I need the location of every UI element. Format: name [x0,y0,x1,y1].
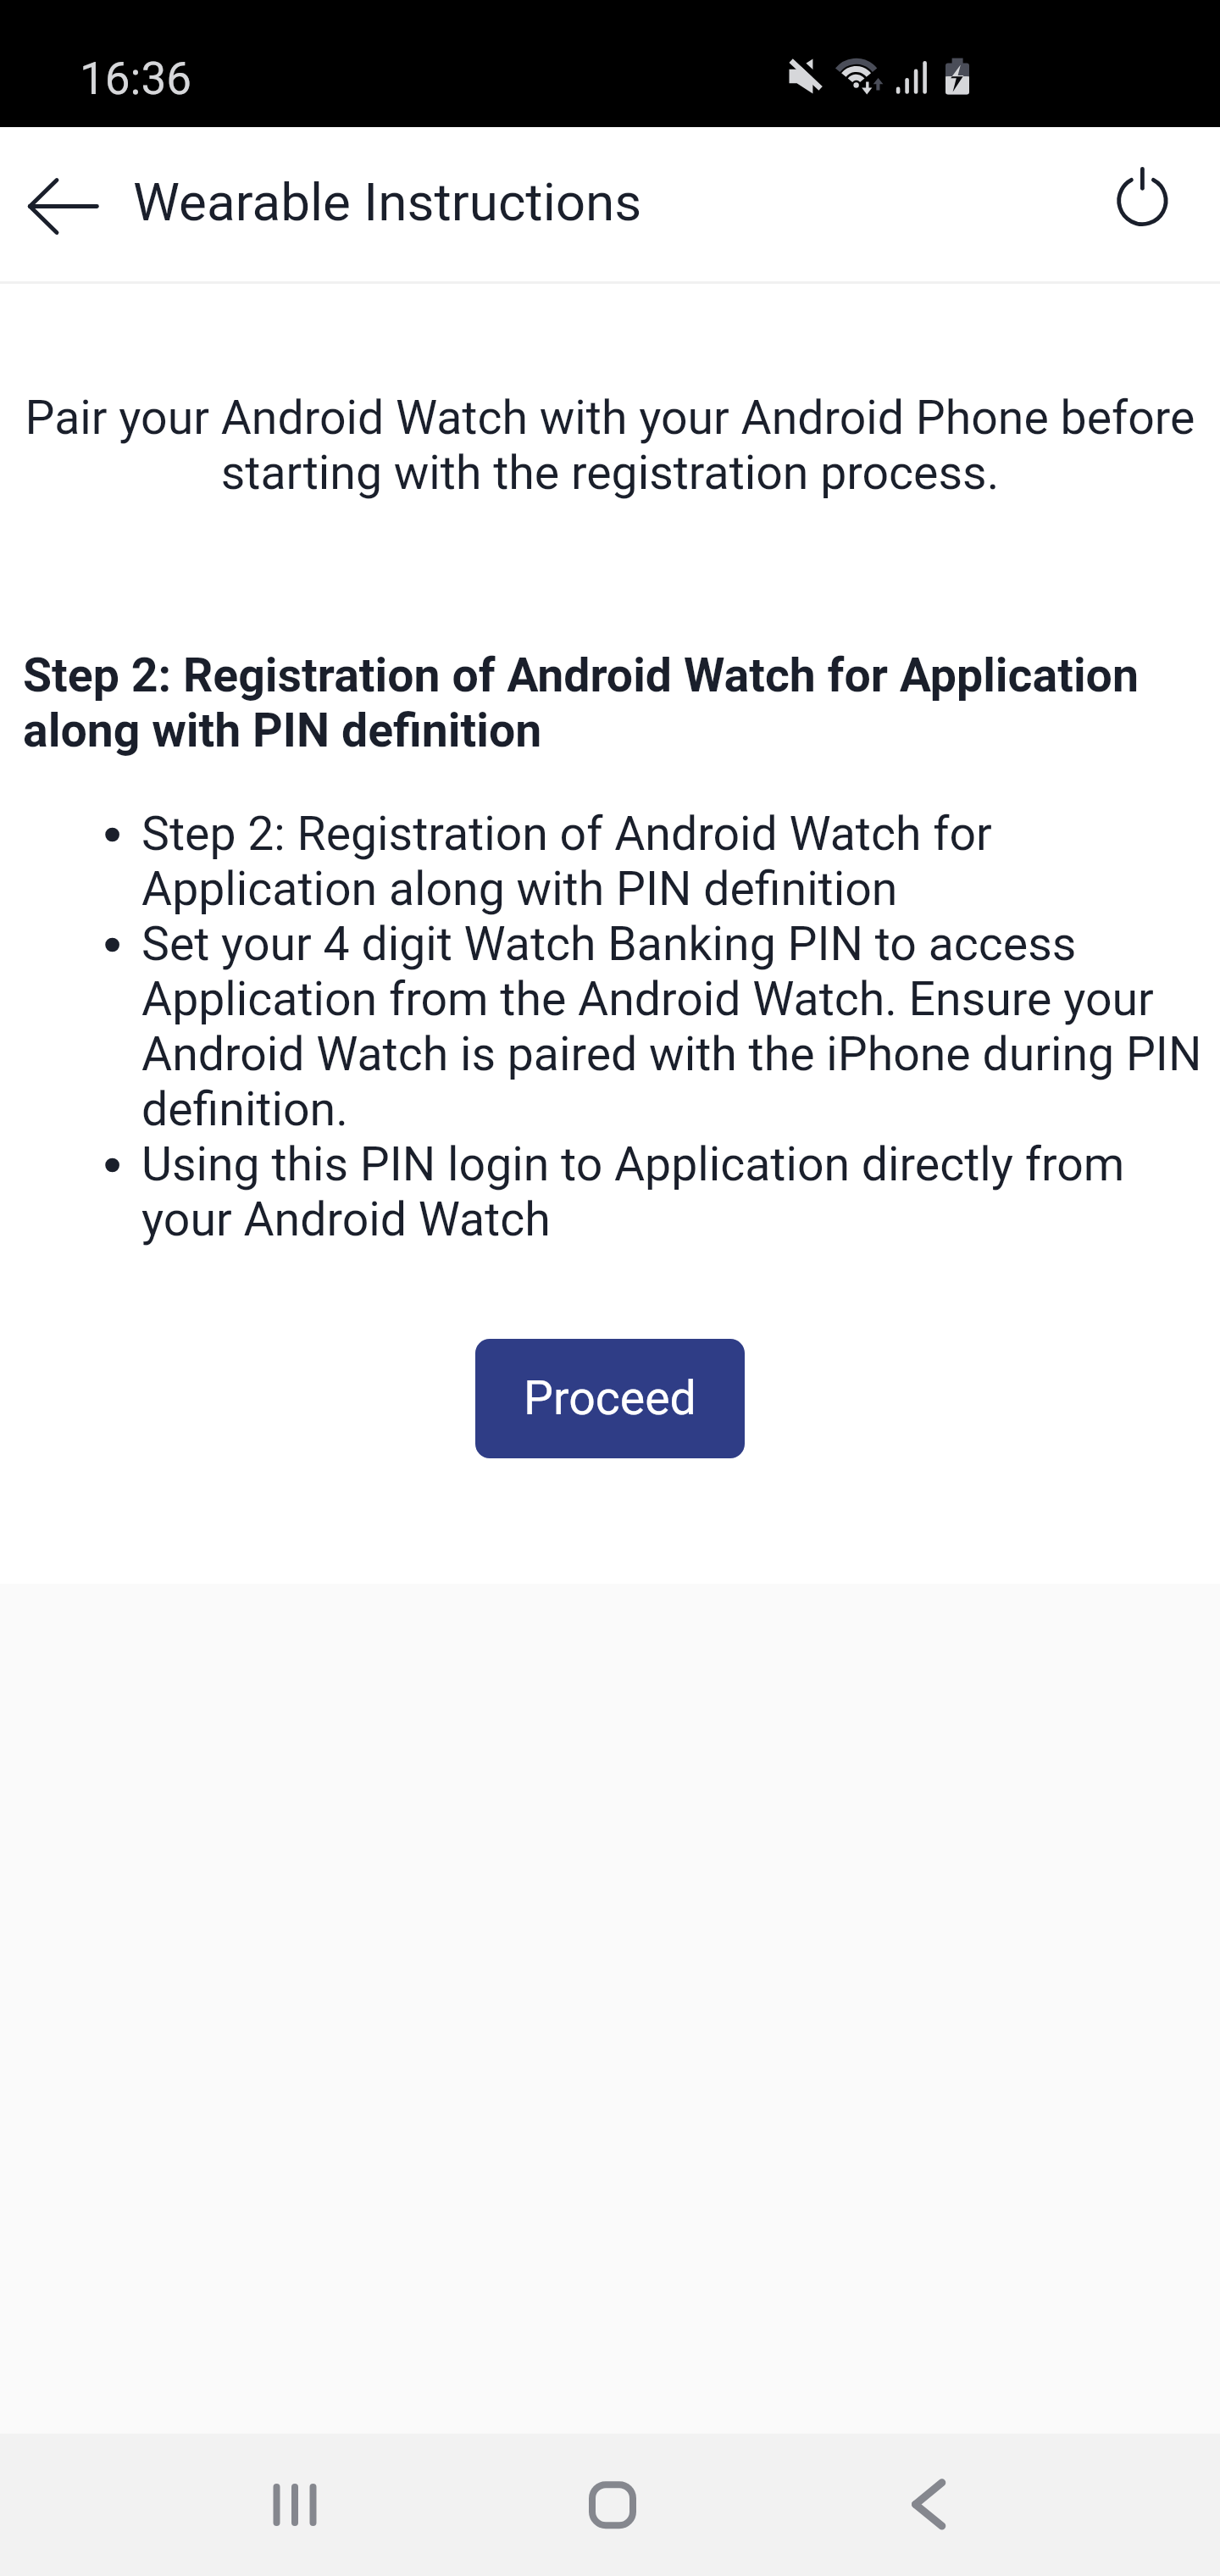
button[interactable]: Back [0,127,127,281]
staticText: Step 2: Registration of Android Watch fo… [23,648,1169,758]
staticText: Step 2: Registration of Android Watch fo… [141,807,1212,917]
staticText: Using this PIN login to Application dire… [141,1137,1212,1247]
staticText: 16:36 [80,53,191,105]
button[interactable]: Power [1093,127,1220,281]
button[interactable]: Home [535,2434,688,2576]
button[interactable]: Proceed [475,1339,745,1458]
staticText: Proceed [524,1371,696,1426]
staticText: Set your 4 digit Watch Banking PIN to ac… [141,917,1212,1137]
button[interactable]: Recent apps [219,2434,371,2576]
button[interactable]: Back [852,2434,1005,2576]
staticText: Wearable Instructions [133,171,642,233]
staticText: Pair your Android Watch with your Androi… [15,391,1205,501]
